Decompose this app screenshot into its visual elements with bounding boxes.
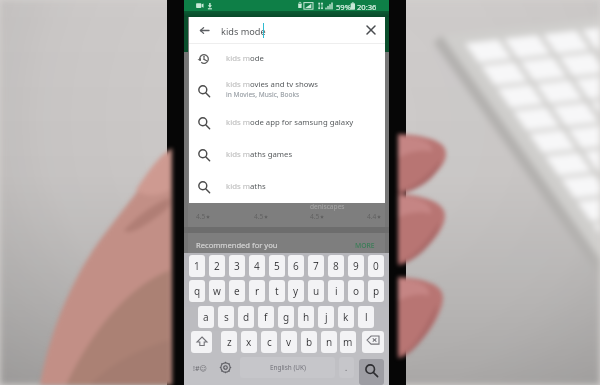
staticText: o — [353, 284, 360, 298]
staticText: z — [227, 335, 232, 349]
button[interactable]: kids m — [189, 107, 385, 139]
staticText: deniscapes — [310, 202, 345, 211]
staticText: English (UK) — [270, 363, 306, 372]
button[interactable]: 2 — [209, 255, 225, 277]
staticText: b — [306, 335, 313, 349]
button[interactable]: a — [198, 306, 214, 328]
staticText: 4.5 — [196, 212, 206, 221]
button[interactable]: o — [348, 280, 364, 302]
button[interactable]: h — [298, 306, 314, 328]
staticText: kids m — [226, 79, 250, 90]
button[interactable]: r — [249, 280, 265, 302]
staticText: kids mode — [221, 25, 266, 38]
staticText: in Movies, Music, Books — [226, 90, 300, 99]
staticText: h — [303, 310, 310, 324]
button[interactable]: x — [241, 331, 257, 353]
button[interactable]: n — [321, 331, 337, 353]
button[interactable]: j — [318, 306, 334, 328]
button[interactable]: i — [328, 280, 344, 302]
button[interactable]: Keyboard settings — [215, 357, 235, 378]
button[interactable]: kids m — [189, 43, 385, 75]
button[interactable]: e — [229, 280, 245, 302]
staticText: 20:36 — [357, 2, 377, 12]
button[interactable]: 3 — [229, 255, 245, 277]
button[interactable]: k — [338, 306, 354, 328]
button[interactable]: b — [301, 331, 317, 353]
button[interactable]: Clear search — [358, 17, 384, 43]
button[interactable]: v — [281, 331, 297, 353]
staticText: v — [286, 335, 292, 349]
button[interactable]: 0 — [368, 255, 384, 277]
staticText: 4.4 — [367, 212, 377, 221]
staticText: g — [283, 310, 290, 324]
button[interactable]: p — [368, 280, 384, 302]
staticText: kids m — [226, 149, 250, 160]
staticText: s — [224, 310, 229, 324]
button[interactable]: MORE — [355, 241, 375, 250]
button[interactable]: s — [218, 306, 234, 328]
staticText: w — [213, 284, 221, 298]
staticText: kids m — [226, 181, 250, 192]
button[interactable]: English (UK) — [240, 357, 335, 378]
staticText: y — [293, 284, 299, 298]
staticText: 0 — [373, 259, 379, 273]
button[interactable]: y — [288, 280, 304, 302]
button[interactable]: 4 — [249, 255, 265, 277]
button[interactable]: Back — [191, 17, 217, 43]
staticText: 4 — [254, 259, 260, 273]
button[interactable]: z — [221, 331, 237, 353]
staticText: 6 — [293, 259, 299, 273]
staticText: 2 — [214, 259, 220, 273]
button[interactable]: u — [308, 280, 324, 302]
staticText: kids m — [226, 117, 250, 128]
staticText: j — [325, 310, 328, 324]
staticText: a — [203, 310, 209, 324]
staticText: p — [373, 284, 380, 298]
button[interactable]: d — [238, 306, 254, 328]
staticText: Recommended for you — [196, 240, 278, 250]
staticText: . — [345, 362, 348, 373]
button[interactable]: g — [278, 306, 294, 328]
staticText: !#☺ — [193, 363, 208, 373]
staticText: 59% — [336, 2, 351, 12]
button[interactable]: . — [339, 357, 354, 378]
staticText: n — [326, 335, 333, 349]
button[interactable] — [362, 331, 384, 353]
staticText: q — [194, 284, 201, 298]
button[interactable]: m — [340, 331, 356, 353]
button[interactable]: c — [261, 331, 277, 353]
button[interactable]: l — [358, 306, 374, 328]
button[interactable]: 9 — [348, 255, 364, 277]
staticText: f — [264, 310, 268, 324]
button[interactable]: t — [269, 280, 285, 302]
button[interactable]: Search — [359, 359, 384, 385]
button[interactable]: kids m — [189, 139, 385, 171]
staticText: 4.5 — [254, 212, 264, 221]
button[interactable]: 7 — [308, 255, 324, 277]
staticText: 7 — [313, 259, 319, 273]
staticText: ovies and tv shows — [250, 79, 319, 90]
staticText: u — [313, 284, 320, 298]
button[interactable]: kids m — [189, 75, 385, 107]
button[interactable]: 5 — [269, 255, 285, 277]
staticText: ode app for samsung galaxy — [250, 117, 354, 128]
button[interactable]: w — [209, 280, 225, 302]
button[interactable] — [191, 331, 212, 353]
staticText: e — [234, 284, 240, 298]
staticText: 5 — [274, 259, 280, 273]
button[interactable]: kids m — [189, 171, 385, 203]
staticText: k — [343, 310, 349, 324]
staticText: 4.5 — [310, 212, 320, 221]
staticText: 9 — [353, 259, 359, 273]
staticText: 8 — [333, 259, 339, 273]
button[interactable]: 6 — [288, 255, 304, 277]
button[interactable]: 1 — [189, 255, 205, 277]
staticText: 3 — [234, 259, 240, 273]
button[interactable]: 8 — [328, 255, 344, 277]
button[interactable]: Symbols — [189, 357, 211, 378]
staticText: l — [365, 310, 368, 324]
button[interactable]: f — [258, 306, 274, 328]
staticText: d — [243, 310, 250, 324]
button[interactable]: q — [189, 280, 205, 302]
staticText: m — [343, 335, 353, 349]
